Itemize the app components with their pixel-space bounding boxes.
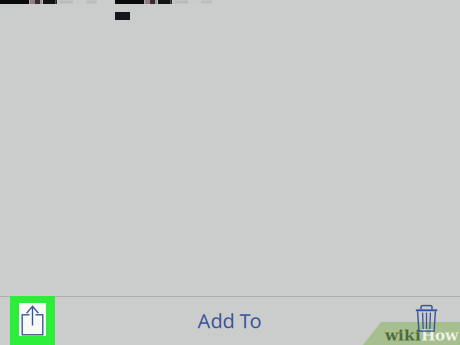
staticText: How [421,326,458,344]
button[interactable]: Add To [181,293,277,345]
button[interactable]: Share [10,296,55,345]
button[interactable]: Delete [404,295,449,345]
staticText: wiki [385,326,421,344]
staticText: Add To [197,307,261,334]
